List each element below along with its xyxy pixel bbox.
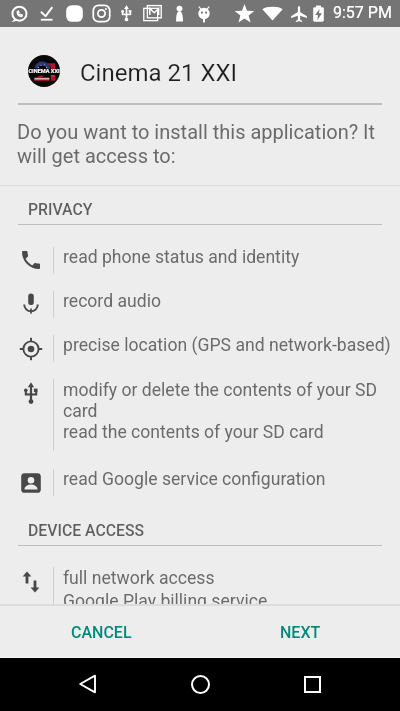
button[interactable]: Back	[64, 660, 112, 708]
button[interactable]: NEXT	[266, 615, 335, 650]
staticText: DEVICE ACCESS	[28, 521, 145, 540]
button[interactable]	[0, 465, 400, 500]
staticText: read phone status and identity	[63, 247, 300, 268]
staticText: CANCEL	[71, 623, 132, 642]
staticText: record audio	[63, 291, 161, 312]
staticText: Google Play billing service	[63, 591, 268, 612]
staticText: NEXT	[280, 623, 321, 642]
staticText: Do you want to install this application?…	[17, 120, 383, 168]
button[interactable]	[0, 287, 400, 322]
staticText: full network access	[63, 568, 215, 589]
button[interactable]	[0, 563, 400, 615]
staticText: CINEMA XXI	[28, 68, 60, 75]
staticText: read Google service configuration	[63, 469, 326, 490]
staticText: Cinema 21 XXI	[80, 59, 238, 87]
staticText: precise location (GPS and network-based)	[63, 335, 391, 356]
button[interactable]: Recent apps	[288, 660, 336, 708]
button[interactable]	[0, 331, 400, 366]
staticText: modify or delete the contents of your SD…	[63, 380, 394, 421]
staticText: PRIVACY	[28, 200, 93, 219]
staticText: read the contents of your SD card	[63, 422, 324, 443]
button[interactable]	[0, 375, 400, 455]
button[interactable]	[0, 243, 400, 278]
button[interactable]: Home	[176, 660, 224, 708]
button[interactable]: CANCEL	[57, 615, 146, 650]
staticText: 9:57 PM	[333, 3, 392, 22]
